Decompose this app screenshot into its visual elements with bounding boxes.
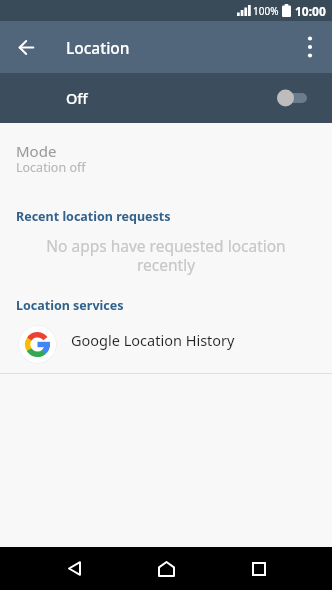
button[interactable] (238, 547, 280, 590)
button[interactable] (53, 547, 95, 590)
staticText: Google Location History (71, 330, 235, 350)
staticText: Recent location requests (16, 208, 171, 225)
staticText: Location off (16, 159, 86, 176)
button[interactable] (0, 21, 52, 73)
button[interactable]: Google Location History (0, 318, 332, 373)
staticText: Location (66, 37, 130, 58)
staticText: No apps have requested location recently (0, 235, 332, 275)
staticText: Off (66, 88, 88, 108)
button[interactable] (145, 547, 187, 590)
staticText: 100% (253, 4, 279, 18)
staticText: 10:00 (295, 3, 326, 19)
button[interactable]: Off (0, 73, 332, 123)
button[interactable] (288, 21, 332, 73)
button[interactable]: Mode (0, 131, 332, 193)
staticText: Mode (16, 141, 57, 161)
staticText: Location services (16, 297, 124, 314)
button[interactable] (18, 325, 57, 364)
